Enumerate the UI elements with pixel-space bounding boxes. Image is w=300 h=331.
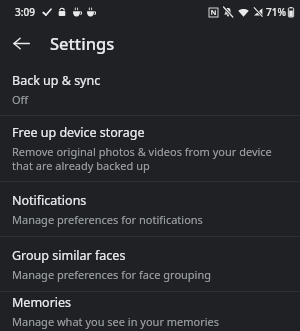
button[interactable]: Back up & sync <box>0 63 300 115</box>
staticText: Back up & sync <box>12 72 101 89</box>
button[interactable]: Back <box>5 27 37 59</box>
staticText: Manage preferences for notifications <box>12 212 203 227</box>
staticText: Settings <box>50 32 115 54</box>
staticText: Remove original photos & videos from you… <box>12 144 286 173</box>
staticText: 3:09 <box>15 5 35 19</box>
button[interactable]: Notifications <box>0 182 300 236</box>
staticText: 71% <box>266 5 286 19</box>
staticText: Manage what you see in your memories <box>12 314 220 329</box>
button[interactable]: Memories <box>0 292 300 331</box>
staticText: Group similar faces <box>12 247 126 264</box>
button[interactable]: Group similar faces <box>0 237 300 291</box>
staticText: Free up device storage <box>12 124 145 141</box>
staticText: Manage preferences for face grouping <box>12 267 212 282</box>
staticText: Memories <box>12 294 72 311</box>
staticText: Notifications <box>12 192 87 209</box>
staticText: Off <box>12 92 29 107</box>
button[interactable]: Free up device storage <box>0 116 300 181</box>
